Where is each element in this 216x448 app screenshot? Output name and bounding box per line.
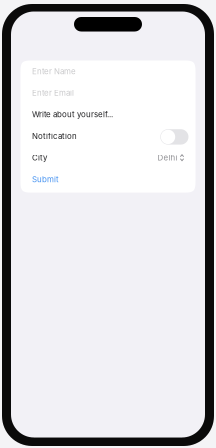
staticText: Delhi xyxy=(157,153,177,162)
staticText: Submit xyxy=(32,174,59,184)
staticText: Enter Name xyxy=(32,66,76,76)
staticText: Write about yourself... xyxy=(32,110,113,119)
button[interactable]: Notification xyxy=(20,125,195,147)
staticText: Enter Email xyxy=(32,88,74,98)
staticText: City xyxy=(32,153,47,162)
button[interactable]: City xyxy=(20,147,195,168)
button[interactable]: Submit xyxy=(20,168,195,190)
staticText: Notification xyxy=(32,131,77,141)
